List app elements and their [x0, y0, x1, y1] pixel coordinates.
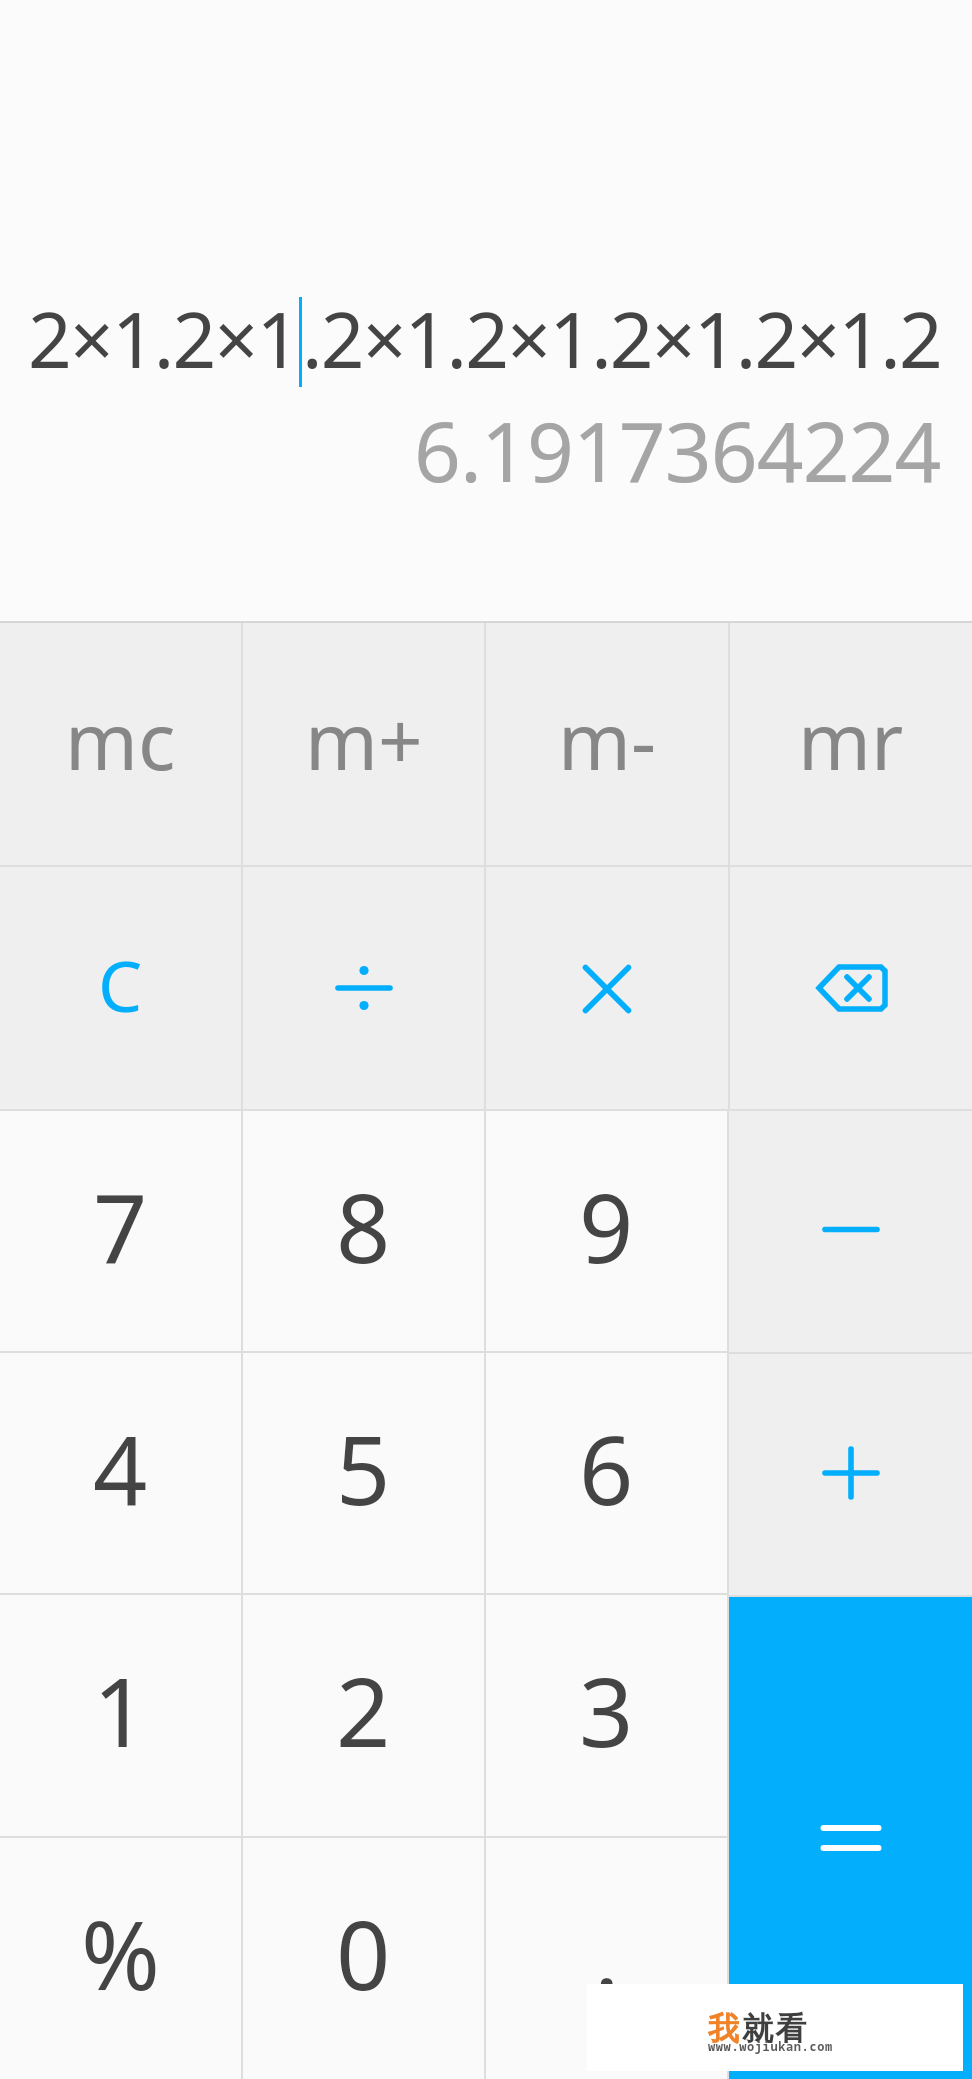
button[interactable]: Backspace: [730, 867, 972, 1109]
staticText: 2: [336, 1645, 391, 1774]
button[interactable]: 7: [0, 1111, 241, 1351]
staticText: m-: [558, 687, 657, 793]
button[interactable]: 2: [243, 1595, 484, 1836]
staticText: .: [594, 1888, 620, 2017]
button[interactable]: Divide: [243, 867, 484, 1109]
button[interactable]: 9: [486, 1111, 727, 1351]
button[interactable]: %: [0, 1838, 241, 2079]
button[interactable]: .: [486, 1838, 727, 2079]
staticText: 4: [93, 1403, 148, 1532]
staticText: 7: [93, 1161, 148, 1290]
staticText: 1: [93, 1645, 148, 1774]
button[interactable]: 3: [486, 1595, 727, 1836]
staticText: m+: [305, 687, 423, 793]
staticText: 我: [708, 2009, 742, 2048]
staticText: mc: [65, 687, 176, 793]
button[interactable]: Minus: [729, 1111, 972, 1352]
button[interactable]: 8: [243, 1111, 484, 1351]
button[interactable]: m+: [243, 623, 484, 865]
button[interactable]: C: [0, 867, 241, 1109]
staticText: 3: [579, 1645, 634, 1774]
staticText: www.wojiukan.com: [708, 2038, 833, 2054]
button[interactable]: mr: [730, 623, 972, 865]
button[interactable]: Equals: [729, 1597, 972, 2079]
button[interactable]: 1: [0, 1595, 241, 1836]
staticText: 2×1.2×1: [28, 286, 299, 390]
button[interactable]: 6: [486, 1353, 727, 1593]
staticText: 0: [336, 1888, 391, 2017]
button[interactable]: mc: [0, 623, 241, 865]
staticText: %: [81, 1888, 160, 2017]
button[interactable]: 5: [243, 1353, 484, 1593]
staticText: 9: [579, 1161, 634, 1290]
staticText: 6: [579, 1403, 634, 1532]
staticText: C: [98, 937, 143, 1032]
staticText: 就看: [742, 2009, 809, 2048]
button[interactable]: 0: [243, 1838, 484, 2079]
button[interactable]: Plus: [729, 1354, 972, 1595]
staticText: 6.1917364224: [414, 394, 941, 506]
staticText: 8: [336, 1161, 391, 1290]
button[interactable]: Multiply: [486, 867, 728, 1109]
staticText: 5: [336, 1403, 391, 1532]
button[interactable]: 4: [0, 1353, 241, 1593]
staticText: .2×1.2×1.2×1.2×1.2: [302, 286, 941, 390]
button[interactable]: m-: [486, 623, 728, 865]
staticText: mr: [798, 687, 904, 793]
